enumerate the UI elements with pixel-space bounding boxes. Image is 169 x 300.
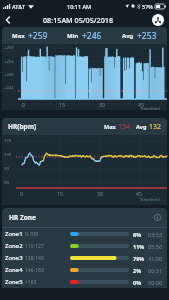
- staticText: Zone1: [5, 230, 23, 238]
- staticText: 15: [59, 101, 65, 108]
- staticText: Zone4: [5, 266, 23, 274]
- staticText: Max: [12, 32, 25, 40]
- staticText: 08:15AM 05/05/2018: [43, 15, 114, 25]
- staticText: +246: [82, 30, 102, 42]
- button[interactable]: Zone5: [5, 276, 163, 288]
- staticText: Time(min): [140, 197, 160, 203]
- staticText: 90: [4, 166, 9, 172]
- staticText: 45: [136, 190, 142, 197]
- staticText: 50: [4, 180, 9, 186]
- staticText: 132: [149, 122, 162, 132]
- staticText: 170: [4, 138, 12, 144]
- staticText: Max: [104, 123, 116, 130]
- staticText: 41:00: [148, 255, 163, 262]
- staticText: 45: [138, 101, 144, 108]
- staticText: 146-163: [25, 267, 44, 274]
- staticText: Time(min): [140, 106, 160, 112]
- button[interactable]: Zone1: [5, 228, 163, 240]
- staticText: Avg: [122, 32, 134, 40]
- staticText: 2%: [133, 267, 142, 274]
- staticText: 154: [118, 122, 131, 132]
- staticText: 110-127: [25, 243, 44, 250]
- staticText: 128-145: [25, 255, 44, 262]
- staticText: 30: [99, 101, 105, 108]
- staticText: 0-109: [25, 231, 39, 238]
- staticText: 15: [57, 190, 63, 197]
- staticText: Avg: [136, 123, 147, 130]
- button[interactable]: Zone4: [5, 264, 163, 276]
- staticText: Zone5: [5, 278, 23, 286]
- staticText: >163: [25, 279, 37, 286]
- staticText: 0: [22, 101, 25, 108]
- staticText: 0%: [133, 279, 142, 286]
- staticText: HR Zone: [9, 213, 36, 222]
- staticText: 57%: [142, 3, 153, 10]
- staticText: +253: [137, 30, 157, 42]
- staticText: +259: [4, 45, 14, 51]
- staticText: +244: [4, 85, 14, 91]
- staticText: 0: [20, 190, 23, 197]
- staticText: 11%: [133, 243, 145, 250]
- staticText: AT&T: [12, 3, 26, 10]
- staticText: Zone2: [5, 242, 23, 250]
- staticText: HR(bpm): [8, 122, 37, 131]
- staticText: +259: [28, 30, 48, 42]
- staticText: 79%: [133, 255, 145, 262]
- button[interactable]: Back: [0, 12, 15, 27]
- staticText: 8%: [133, 231, 142, 238]
- staticText: Zone3: [5, 254, 23, 262]
- staticText: 130: [4, 152, 12, 158]
- staticText: 00:00: [148, 279, 163, 286]
- staticText: 05:56: [148, 243, 163, 250]
- staticText: 30: [97, 190, 103, 197]
- staticText: +254: [4, 59, 14, 65]
- staticText: 10:11 AM: [67, 3, 92, 10]
- staticText: 00:51: [148, 267, 163, 274]
- staticText: +249: [4, 72, 14, 78]
- button[interactable]: Info: [153, 213, 162, 222]
- button[interactable]: Share: [152, 14, 164, 26]
- staticText: 03:53: [148, 231, 163, 238]
- button[interactable]: Zone3: [5, 252, 163, 264]
- button[interactable]: Zone2: [5, 240, 163, 252]
- staticText: Min: [67, 32, 79, 40]
